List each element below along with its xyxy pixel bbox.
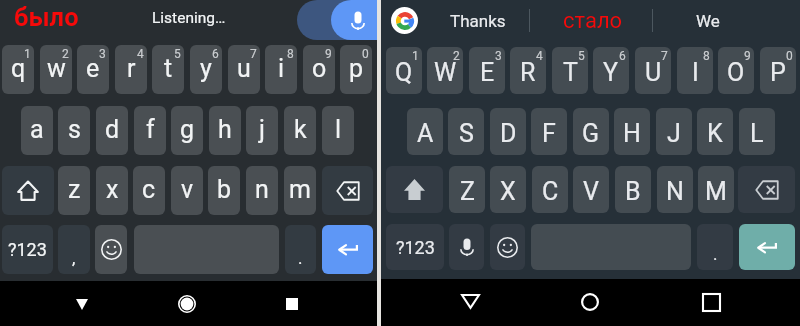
button[interactable]: D [490, 108, 526, 155]
button[interactable]: Thanks [431, 0, 525, 41]
button[interactable]: r [115, 45, 147, 94]
button[interactable]: z [58, 166, 90, 215]
button[interactable]: Back [52, 281, 112, 326]
button[interactable]: Emoji [95, 225, 127, 274]
staticText: e [86, 54, 100, 83]
staticText: Thanks [450, 11, 506, 31]
button[interactable]: Enter [322, 225, 373, 274]
button[interactable]: A [407, 108, 443, 155]
button[interactable]: s [58, 106, 90, 155]
staticText: , [72, 248, 76, 268]
button[interactable]: We [663, 0, 753, 41]
staticText: 3 [495, 49, 502, 63]
staticText: z [68, 175, 81, 204]
button[interactable]: G [573, 108, 609, 155]
staticText: 1 [412, 49, 419, 63]
button[interactable]: Shift [386, 166, 443, 213]
button[interactable]: d [96, 106, 128, 155]
button[interactable]: o [303, 45, 335, 94]
staticText: o [312, 54, 327, 83]
button[interactable]: S [448, 108, 484, 155]
button[interactable]: k [284, 106, 316, 155]
button[interactable]: u [228, 45, 260, 94]
button[interactable]: Comma [58, 225, 90, 274]
staticText: F [542, 119, 556, 148]
button[interactable]: E [469, 47, 505, 94]
button[interactable]: U [635, 47, 671, 94]
staticText: было [14, 2, 79, 32]
button[interactable]: Recents [262, 281, 322, 326]
button[interactable]: K [697, 108, 733, 155]
button[interactable]: w [40, 45, 72, 94]
button[interactable]: F [531, 108, 567, 155]
button[interactable]: a [21, 106, 53, 155]
button[interactable]: Home [560, 279, 620, 326]
staticText: c [142, 175, 156, 204]
staticText: 3 [99, 47, 106, 61]
button[interactable]: B [615, 166, 651, 213]
button[interactable]: Z [449, 166, 485, 213]
button[interactable]: Q [386, 47, 422, 94]
button[interactable]: M [698, 166, 734, 213]
button[interactable]: l [322, 106, 354, 155]
button[interactable]: i [265, 45, 297, 94]
button[interactable]: j [246, 106, 278, 155]
button[interactable]: v [171, 166, 203, 215]
button[interactable]: P [760, 47, 796, 94]
button[interactable]: f [134, 106, 166, 155]
button[interactable]: Shift [2, 166, 54, 215]
button[interactable]: Backspace [738, 166, 795, 213]
staticText: X [500, 177, 516, 206]
button[interactable]: Google Assistant [391, 7, 418, 34]
button[interactable]: I [677, 47, 713, 94]
button[interactable]: Symbols [386, 224, 444, 270]
button[interactable]: Voice input [331, 0, 377, 40]
button[interactable]: Recents [681, 279, 741, 326]
button[interactable]: Enter [739, 224, 795, 270]
button[interactable]: X [490, 166, 526, 213]
button[interactable]: стало [535, 0, 650, 41]
button[interactable]: T [552, 47, 588, 94]
button[interactable]: y [190, 45, 222, 94]
staticText: M [705, 177, 727, 206]
button[interactable]: C [532, 166, 568, 213]
staticText: 8 [703, 49, 710, 63]
staticText: r [127, 54, 136, 83]
button[interactable]: x [96, 166, 128, 215]
button[interactable]: e [77, 45, 109, 94]
staticText: C [542, 177, 559, 206]
button[interactable]: Emoji [490, 224, 525, 270]
button[interactable]: n [246, 166, 278, 215]
button[interactable]: b [208, 166, 240, 215]
button[interactable]: g [171, 106, 203, 155]
button[interactable]: L [739, 108, 775, 155]
staticText: g [180, 115, 195, 144]
button[interactable]: Backspace [322, 166, 373, 215]
button[interactable]: Symbols [2, 225, 53, 274]
button[interactable]: N [657, 166, 693, 213]
button[interactable]: J [656, 108, 692, 155]
button[interactable]: Home [157, 281, 217, 326]
staticText: p [349, 54, 364, 83]
button[interactable]: R [510, 47, 546, 94]
button[interactable]: m [284, 166, 316, 215]
button[interactable]: t [152, 45, 184, 94]
button[interactable]: V [573, 166, 609, 213]
staticText: q [11, 54, 26, 83]
button[interactable]: Y [593, 47, 629, 94]
button[interactable]: c [133, 166, 165, 215]
button[interactable]: Period [285, 225, 316, 274]
button[interactable]: q [2, 45, 34, 94]
button[interactable]: Period [697, 224, 733, 270]
button[interactable]: Back [440, 279, 500, 326]
staticText: P [770, 58, 786, 87]
button[interactable]: h [209, 106, 241, 155]
button[interactable]: H [614, 108, 650, 155]
button[interactable]: W [427, 47, 463, 94]
button[interactable]: Voice input [449, 224, 484, 270]
button[interactable]: p [340, 45, 372, 94]
staticText: U [645, 58, 662, 87]
button[interactable]: O [718, 47, 754, 94]
